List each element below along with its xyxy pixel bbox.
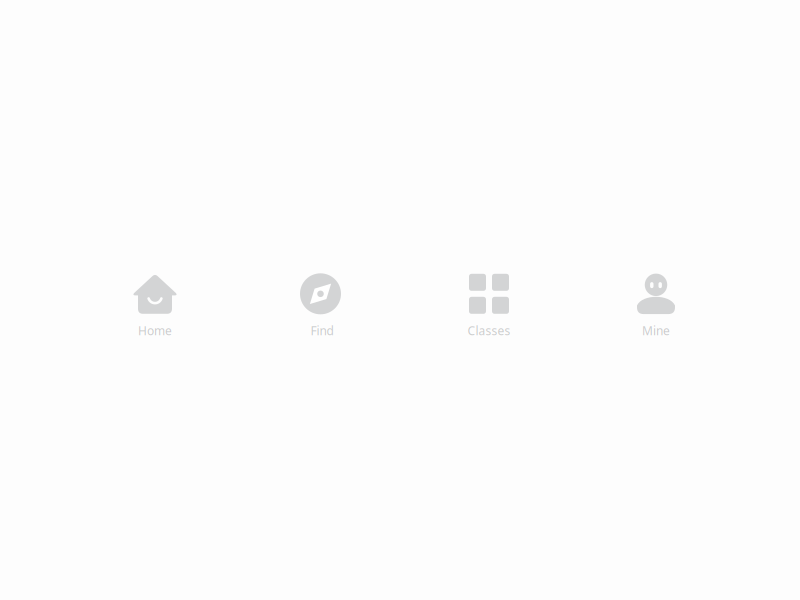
button[interactable]: Home [71, 273, 238, 339]
staticText: Classes [467, 322, 510, 339]
button[interactable]: Find [238, 273, 405, 339]
staticText: Home [138, 322, 172, 339]
staticText: Find [310, 322, 333, 339]
button[interactable]: Mine [572, 273, 739, 339]
staticText: Mine [642, 322, 670, 339]
button[interactable]: Classes [405, 273, 572, 339]
